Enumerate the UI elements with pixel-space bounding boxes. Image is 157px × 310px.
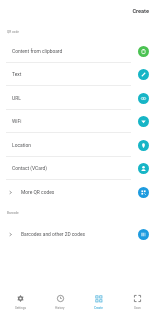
staticText: Location bbox=[12, 142, 31, 148]
staticText: History bbox=[55, 306, 65, 310]
staticText: Barcode bbox=[7, 211, 19, 215]
other: Barcodes and other 2D codes bbox=[138, 229, 149, 240]
staticText: WiFi bbox=[12, 118, 22, 124]
button[interactable]: Barcodes and other 2D codes bbox=[0, 222, 157, 246]
staticText: Create bbox=[94, 306, 103, 310]
staticText: Create bbox=[0, 8, 149, 15]
other: More QR codes bbox=[138, 187, 149, 198]
button[interactable]: Settings bbox=[0, 284, 40, 310]
staticText: URL bbox=[12, 95, 21, 101]
staticText: More QR codes bbox=[21, 189, 55, 195]
staticText: Settings bbox=[15, 306, 26, 310]
staticText: Barcodes and other 2D codes bbox=[21, 231, 86, 237]
staticText: QR code bbox=[7, 30, 19, 34]
button[interactable]: Location bbox=[0, 133, 157, 157]
other: Text bbox=[138, 69, 149, 80]
button[interactable]: Content from clipboard bbox=[0, 39, 157, 63]
button[interactable]: More QR codes bbox=[0, 180, 157, 204]
button[interactable]: History bbox=[40, 284, 79, 310]
button[interactable]: Contact (VCard) bbox=[0, 156, 157, 180]
staticText: Contact (VCard) bbox=[12, 165, 48, 171]
staticText: Text bbox=[12, 71, 22, 77]
staticText: Scan bbox=[134, 306, 141, 310]
button[interactable]: URL bbox=[0, 86, 157, 110]
other: Content from clipboard bbox=[138, 46, 149, 57]
button[interactable]: Text bbox=[0, 62, 157, 86]
other: Location bbox=[138, 140, 149, 151]
button[interactable]: Create bbox=[79, 284, 118, 310]
button[interactable]: WiFi bbox=[0, 109, 157, 133]
other: URL bbox=[138, 93, 149, 104]
other: WiFi bbox=[138, 116, 149, 127]
button[interactable]: Scan bbox=[118, 284, 157, 310]
staticText: Content from clipboard bbox=[12, 48, 63, 54]
other: Contact (VCard) bbox=[138, 163, 149, 174]
